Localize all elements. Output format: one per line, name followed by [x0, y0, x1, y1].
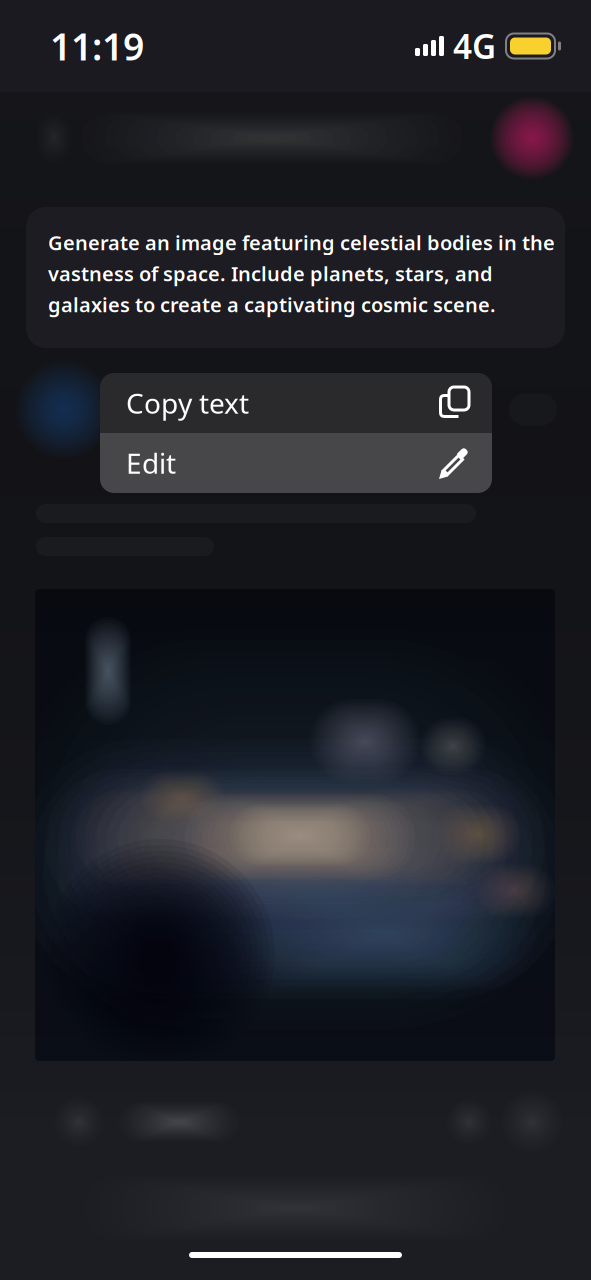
staticText: 11:19: [50, 21, 144, 71]
staticText: galaxies to create a captivating cosmic …: [48, 291, 496, 318]
staticText: vastness of space. Include planets, star…: [48, 260, 493, 287]
button[interactable]: Message field: [0, 1175, 591, 1241]
button[interactable]: Edit: [100, 433, 492, 493]
button[interactable]: Back: [30, 110, 78, 166]
staticText: Copy text: [126, 384, 249, 422]
button[interactable]: Regenerate: [51, 1094, 107, 1150]
staticText: Edit: [126, 444, 176, 482]
button[interactable]: Copy text: [100, 373, 492, 433]
button[interactable]: Like: [441, 1094, 497, 1150]
button[interactable]: Profile: [491, 97, 573, 179]
staticText: 4G: [453, 24, 496, 68]
staticText: Generate an image featuring celestial bo…: [48, 229, 555, 256]
button[interactable]: More: [497, 1087, 567, 1157]
